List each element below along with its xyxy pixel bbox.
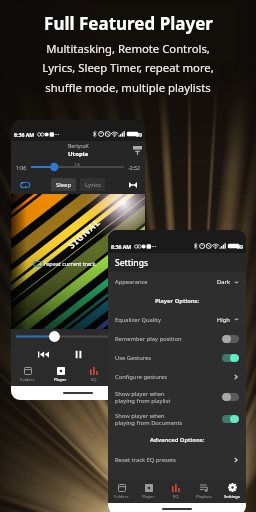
staticText: 99 bbox=[237, 243, 243, 250]
button[interactable]: Player bbox=[135, 480, 162, 503]
staticText: -2:52 bbox=[128, 164, 140, 171]
button[interactable]: Previous bbox=[35, 346, 51, 362]
staticText: Player Options: bbox=[155, 297, 200, 305]
button[interactable]: Player bbox=[44, 363, 77, 386]
staticText: Playlists bbox=[120, 377, 136, 383]
staticText: Player bbox=[142, 494, 155, 500]
staticText: SIGNAL bbox=[65, 215, 103, 251]
staticText: 8:36 AM bbox=[111, 243, 132, 250]
staticText: 99 bbox=[136, 131, 142, 138]
button[interactable]: Settings bbox=[218, 480, 246, 503]
button[interactable]: Sleep bbox=[51, 178, 76, 191]
staticText: Lyrics bbox=[85, 181, 101, 189]
staticText: Use Gestures bbox=[115, 354, 222, 362]
button[interactable]: Next bbox=[105, 346, 121, 362]
button[interactable]: Equalizer Quality bbox=[108, 310, 246, 329]
button[interactable]: Appearance bbox=[108, 272, 246, 292]
staticText: 1:06 bbox=[16, 164, 27, 171]
staticText: Reset track EQ presets bbox=[115, 456, 233, 464]
staticText: EQ bbox=[91, 377, 97, 383]
staticText: High bbox=[217, 316, 230, 324]
staticText: EQ bbox=[173, 494, 179, 500]
staticText: Folders bbox=[114, 494, 129, 500]
button[interactable]: Pause bbox=[70, 346, 86, 362]
button[interactable]: Show player when playing from playlist bbox=[108, 386, 246, 408]
staticText: Settings bbox=[115, 257, 149, 269]
button[interactable]: Folders bbox=[108, 480, 135, 503]
staticText: Multitasking, Remote Controls, Lyrics, S… bbox=[42, 41, 214, 96]
staticText: Folders bbox=[20, 377, 35, 383]
button[interactable]: Configure gestures bbox=[108, 367, 246, 386]
staticText: Show player when playing from Documents bbox=[115, 412, 222, 427]
button[interactable]: Remember play position bbox=[108, 329, 246, 348]
staticText: Advanced Options: bbox=[150, 436, 205, 444]
button[interactable]: Use Gestures bbox=[108, 348, 246, 367]
button[interactable]: Shuffle bbox=[125, 177, 140, 192]
staticText: Playlists bbox=[196, 494, 212, 500]
button[interactable]: Lyrics bbox=[80, 178, 105, 191]
staticText: Settings bbox=[224, 494, 240, 500]
staticText: Appearance bbox=[115, 278, 148, 286]
button[interactable]: Playlists bbox=[190, 480, 218, 503]
button[interactable]: EQ bbox=[77, 363, 111, 386]
button[interactable]: Repeat bbox=[16, 177, 31, 192]
button[interactable]: Show player when playing from Documents bbox=[108, 408, 246, 430]
staticText: Remember play position bbox=[115, 335, 222, 343]
button[interactable]: Folders bbox=[11, 363, 44, 386]
staticText: Show player when playing from playlist bbox=[115, 390, 222, 405]
button[interactable]: Playlists bbox=[111, 363, 145, 386]
button[interactable]: Cast bbox=[129, 142, 145, 158]
staticText: Configure gestures bbox=[115, 373, 233, 381]
staticText: BertycaX bbox=[68, 143, 89, 150]
staticText: Equalizer Quality bbox=[115, 316, 161, 324]
staticText: 8:36 AM bbox=[14, 131, 35, 138]
button[interactable]: Reset track EQ presets bbox=[108, 450, 246, 469]
staticText: Dark bbox=[217, 278, 230, 286]
staticText: Full Featured Player bbox=[44, 12, 213, 35]
staticText: Player bbox=[54, 377, 67, 383]
staticText: Utopia bbox=[68, 150, 89, 158]
staticText: repeat current track bbox=[44, 260, 96, 267]
staticText: 1/6 bbox=[74, 162, 81, 167]
button[interactable]: EQ bbox=[162, 480, 190, 503]
staticText: Sleep bbox=[56, 181, 72, 189]
